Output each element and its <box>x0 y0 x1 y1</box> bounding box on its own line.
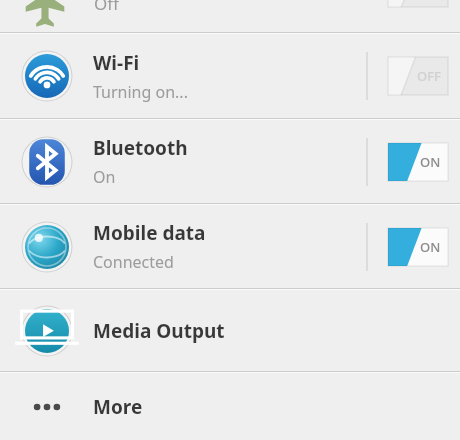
button[interactable]: Mobile data <box>0 205 460 288</box>
button[interactable]: Bluetooth switch <box>388 143 448 181</box>
button[interactable]: More <box>0 373 460 440</box>
staticText: More <box>93 394 143 420</box>
staticText: OFF <box>417 67 441 85</box>
button[interactable]: Media Output <box>0 290 460 371</box>
staticText: Wi-Fi <box>93 50 140 76</box>
button[interactable]: Mobile data switch <box>388 228 448 266</box>
staticText: Mobile data <box>93 220 206 246</box>
staticText: Media Output <box>93 318 225 344</box>
staticText: Connected <box>93 251 174 273</box>
staticText: Bluetooth <box>93 135 188 161</box>
staticText: Off <box>94 0 119 15</box>
button[interactable]: Wi-Fi switch <box>388 57 448 95</box>
staticText: ON <box>420 238 441 256</box>
button[interactable]: Bluetooth <box>0 120 460 203</box>
staticText: ON <box>420 153 441 171</box>
button[interactable]: Wi-Fi <box>0 34 460 118</box>
staticText: Turning on... <box>93 81 188 103</box>
staticText: On <box>93 166 116 188</box>
button[interactable]: Airplane mode Off <box>0 0 460 32</box>
